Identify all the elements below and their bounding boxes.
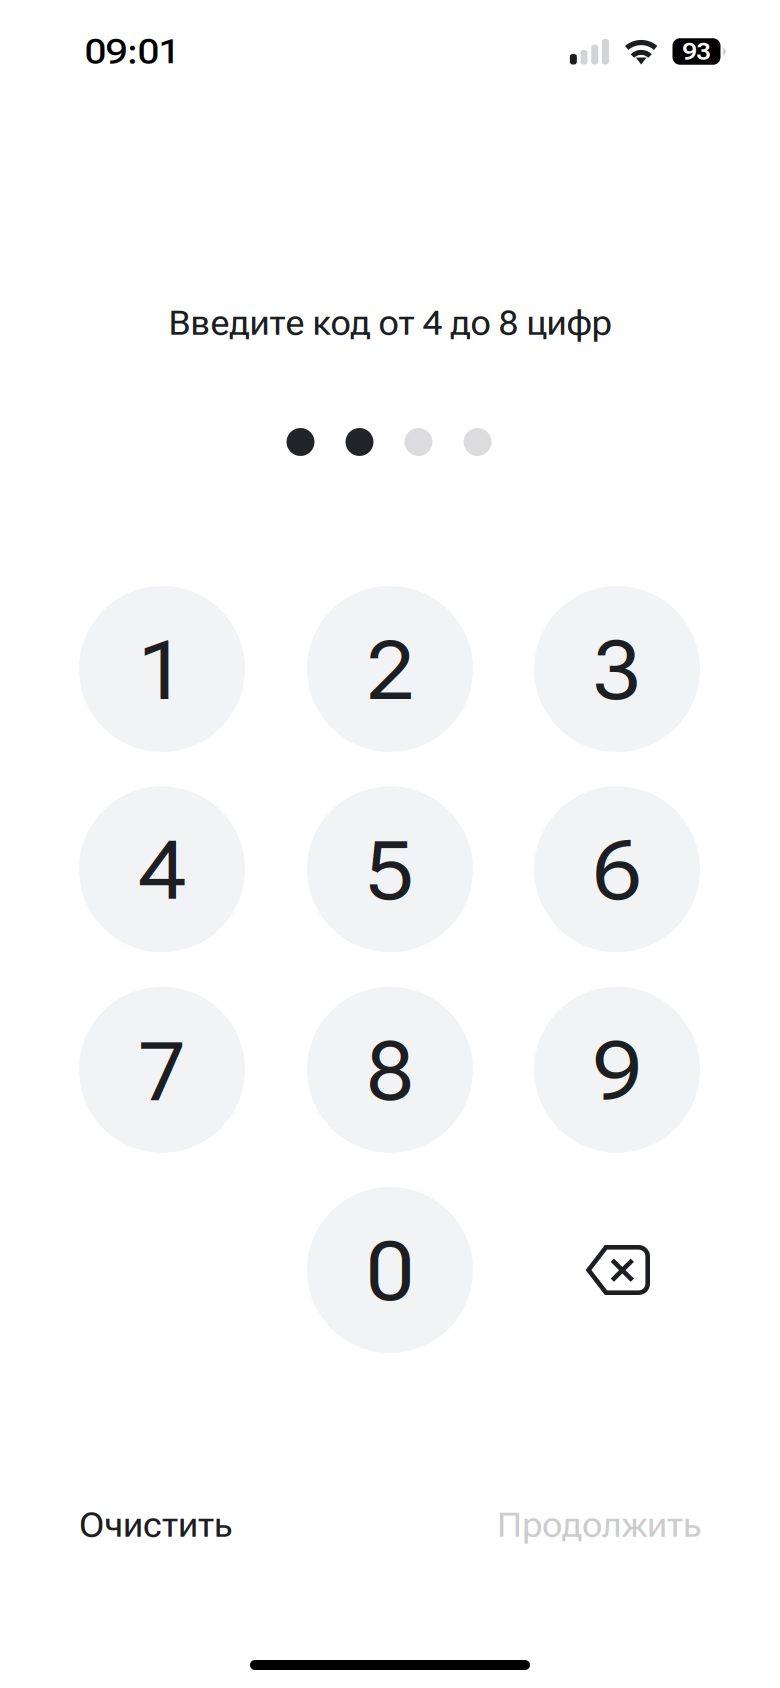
- staticText: Продолжить: [497, 1505, 701, 1545]
- staticText: 0: [366, 1224, 414, 1320]
- button[interactable]: 9: [534, 987, 700, 1153]
- staticText: 5: [366, 823, 414, 919]
- staticText: 3: [593, 623, 641, 719]
- button[interactable]: 4: [79, 786, 245, 952]
- staticText: 7: [138, 1024, 186, 1120]
- staticText: 93: [682, 37, 710, 65]
- staticText: 6: [593, 823, 641, 919]
- staticText: 4: [138, 823, 186, 919]
- button[interactable]: Delete: [534, 1187, 700, 1353]
- button[interactable]: 8: [307, 987, 473, 1153]
- button[interactable]: 2: [307, 586, 473, 752]
- button[interactable]: 1: [79, 586, 245, 752]
- staticText: 1: [138, 623, 186, 719]
- button[interactable]: 5: [307, 786, 473, 952]
- button[interactable]: 0: [307, 1187, 473, 1353]
- staticText: Очистить: [79, 1505, 232, 1545]
- staticText: Введите код от 4 до 8 цифр: [168, 303, 611, 343]
- button[interactable]: Продолжить: [461, 1493, 701, 1557]
- button[interactable]: 7: [79, 987, 245, 1153]
- staticText: 8: [366, 1024, 414, 1120]
- button[interactable]: 6: [534, 786, 700, 952]
- staticText: 9: [593, 1024, 641, 1120]
- button[interactable]: Очистить: [79, 1493, 279, 1557]
- button[interactable]: 3: [534, 586, 700, 752]
- staticText: 2: [366, 623, 414, 719]
- staticText: 09:01: [85, 31, 180, 72]
